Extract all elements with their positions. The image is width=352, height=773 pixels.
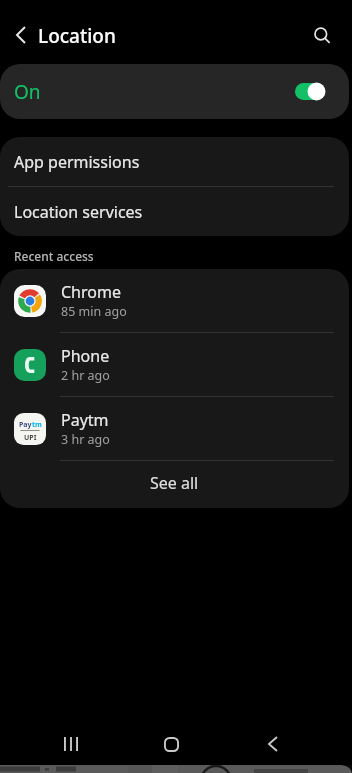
staticText: App permissions	[14, 151, 140, 173]
button[interactable]: Location services	[0, 187, 349, 236]
button[interactable]: Recent apps	[47, 720, 95, 768]
staticText: 2 hr ago	[61, 367, 110, 384]
button[interactable]: Back	[248, 720, 296, 768]
button[interactable]: See all	[0, 461, 349, 508]
staticText: UPI	[24, 433, 37, 443]
staticText: tm	[32, 420, 42, 430]
button[interactable]: Pay	[0, 397, 349, 460]
staticText: On	[14, 79, 41, 105]
button[interactable]: Navigate up	[6, 21, 34, 49]
button[interactable]: App permissions	[0, 137, 349, 186]
staticText: Pay	[19, 420, 32, 430]
button[interactable]: On	[0, 64, 349, 119]
button[interactable]: Chrome	[0, 269, 349, 332]
button[interactable]: Search	[307, 21, 337, 51]
staticText: Location	[38, 23, 116, 49]
staticText: 3 hr ago	[61, 431, 110, 448]
staticText: Paytm	[61, 409, 109, 431]
button[interactable]: Phone	[0, 333, 349, 396]
staticText: Recent access	[14, 248, 94, 264]
staticText: Phone	[61, 345, 110, 367]
button[interactable]: Home	[147, 720, 195, 768]
staticText: See all	[150, 472, 199, 494]
staticText: 85 min ago	[61, 303, 127, 320]
staticText: Location services	[14, 201, 143, 223]
staticText: Chrome	[61, 281, 121, 303]
